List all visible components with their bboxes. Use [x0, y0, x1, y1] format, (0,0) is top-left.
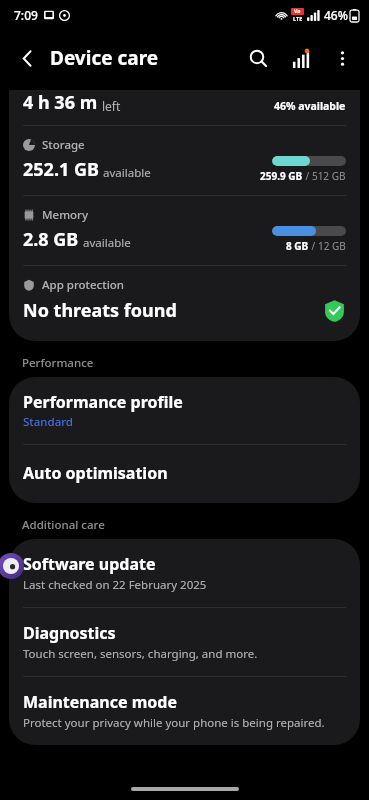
button[interactable]: Usage statistics: [279, 37, 321, 79]
staticText: Software update: [23, 553, 156, 575]
staticText: 46%: [324, 7, 348, 23]
button[interactable]: Performance profile: [9, 377, 360, 444]
staticText: 2.8 GB: [23, 227, 79, 252]
staticText: Auto optimisation: [23, 462, 168, 484]
staticText: 259.9 GB: [260, 169, 303, 183]
staticText: 252.1 GB: [23, 157, 99, 182]
staticText: Device care: [50, 45, 159, 71]
staticText: Vo: [294, 8, 301, 15]
button[interactable]: Auto optimisation: [9, 445, 360, 503]
staticText: Protect your privacy while your phone is…: [23, 715, 325, 731]
staticText: Memory: [42, 207, 89, 223]
staticText: Storage: [42, 137, 85, 153]
staticText: Last checked on 22 February 2025: [23, 577, 207, 593]
staticText: Touch screen, sensors, charging, and mor…: [23, 646, 258, 662]
staticText: App protection: [42, 277, 124, 293]
button[interactable]: Maintenance mode: [9, 677, 360, 745]
staticText: left: [102, 98, 121, 114]
button[interactable]: Back: [6, 37, 48, 79]
staticText: 4 h 36 m: [23, 90, 98, 115]
staticText: available: [83, 235, 131, 251]
staticText: LTE: [293, 15, 303, 22]
button[interactable]: 4 h 36 m: [9, 90, 360, 125]
staticText: No threats found: [23, 298, 177, 323]
staticText: / 12 GB: [309, 239, 346, 253]
staticText: 46% available: [274, 99, 346, 113]
staticText: Standard: [23, 414, 73, 430]
button[interactable]: Software update: [9, 539, 360, 607]
staticText: Additional care: [22, 517, 105, 533]
staticText: Diagnostics: [23, 622, 116, 644]
staticText: 7:09: [14, 7, 38, 23]
staticText: 8 GB: [286, 239, 309, 253]
staticText: Performance: [22, 355, 94, 371]
staticText: Performance profile: [23, 391, 183, 413]
button[interactable]: Storage: [9, 126, 360, 195]
staticText: available: [103, 165, 151, 181]
button[interactable]: Memory: [9, 196, 360, 265]
staticText: / 512 GB: [303, 169, 346, 183]
button[interactable]: More options: [321, 37, 363, 79]
button[interactable]: App protection: [9, 266, 360, 341]
button[interactable]: Search: [237, 37, 279, 79]
staticText: Maintenance mode: [23, 691, 177, 713]
button[interactable]: Diagnostics: [9, 608, 360, 676]
